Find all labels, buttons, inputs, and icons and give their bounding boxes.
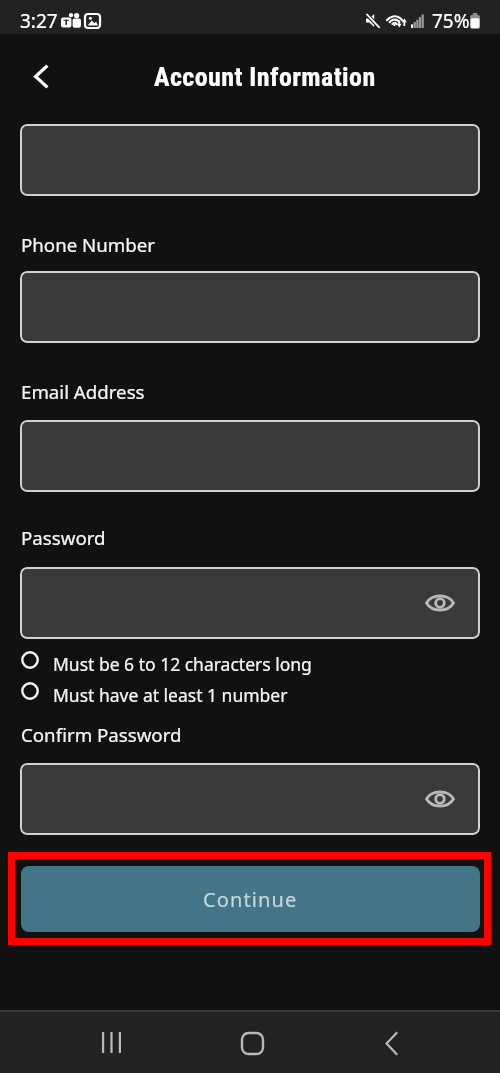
button[interactable]: Back (363, 1015, 419, 1071)
staticText: Email Address (21, 379, 145, 404)
button[interactable]: Must have at least 1 number (18, 682, 338, 712)
button[interactable]: Recent apps (83, 1014, 139, 1070)
button[interactable]: Home (224, 1015, 280, 1071)
staticText: 75% (432, 8, 470, 34)
button[interactable]: Phone Number (20, 271, 480, 343)
button[interactable]: Confirm Password (20, 763, 480, 835)
button[interactable]: Back (20, 55, 62, 97)
staticText: Continue (203, 886, 298, 913)
staticText: Must have at least 1 number (53, 683, 288, 707)
staticText: Must be 6 to 12 characters long (53, 652, 312, 676)
staticText: Confirm Password (21, 722, 182, 747)
button[interactable]: Must be 6 to 12 characters long (18, 651, 338, 681)
staticText: Account Information (154, 62, 376, 92)
button[interactable]: Full name (20, 124, 480, 196)
button[interactable]: Continue (21, 866, 480, 932)
button[interactable]: Show password (416, 775, 464, 823)
staticText: Password (21, 525, 106, 550)
button[interactable]: Show password (416, 579, 464, 627)
button[interactable]: Password (20, 567, 480, 639)
staticText: Phone Number (21, 232, 156, 257)
button[interactable]: Email Address (20, 420, 480, 492)
staticText: 3:27 (20, 8, 58, 34)
